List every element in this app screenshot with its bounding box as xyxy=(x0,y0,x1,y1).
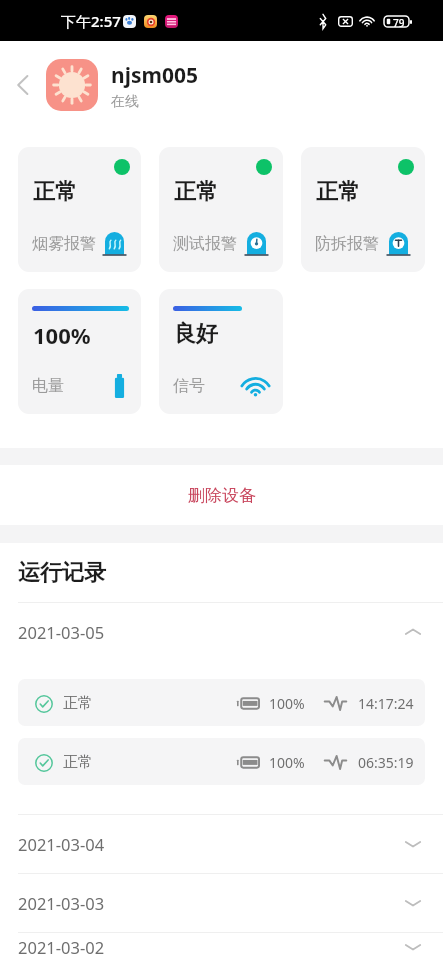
staticText: 79 xyxy=(393,16,405,27)
staticText: 烟雾报警 xyxy=(32,234,96,254)
staticText: 100% xyxy=(269,694,305,713)
staticText: 运行记录 xyxy=(18,559,106,587)
staticText: 正常 xyxy=(316,178,360,206)
button[interactable]: 2021-03-03 xyxy=(0,874,443,932)
staticText: 信号 xyxy=(173,376,205,396)
button[interactable]: 正常 xyxy=(159,147,283,272)
staticText: 下午2:57 xyxy=(61,11,121,31)
staticText: njsm005 xyxy=(111,61,198,90)
staticText: 正常 xyxy=(33,178,77,206)
staticText: 2021-03-05 xyxy=(18,621,105,643)
staticText: 防拆报警 xyxy=(315,234,379,254)
button[interactable]: 正常 xyxy=(18,679,425,726)
button[interactable]: 100% xyxy=(18,289,141,414)
button[interactable]: 2021-03-04 xyxy=(0,815,443,873)
button[interactable]: 正常 xyxy=(301,147,425,272)
staticText: 06:35:19 xyxy=(358,753,414,772)
staticText: 100% xyxy=(33,320,91,350)
staticText: 正常 xyxy=(63,753,93,772)
staticText: 良好 xyxy=(174,320,218,348)
button[interactable]: 正常 xyxy=(18,738,425,785)
staticText: 14:17:24 xyxy=(358,694,414,713)
staticText: 在线 xyxy=(111,93,139,111)
button[interactable]: 删除设备 xyxy=(0,465,443,525)
button[interactable]: Back xyxy=(7,69,39,101)
button[interactable]: 良好 xyxy=(159,289,283,414)
staticText: 删除设备 xyxy=(188,485,256,506)
button[interactable]: 2021-03-05 xyxy=(0,603,443,661)
staticText: 测试报警 xyxy=(173,234,237,254)
button[interactable]: 2021-03-02 xyxy=(0,933,443,960)
staticText: 2021-03-02 xyxy=(18,936,105,958)
staticText: 100% xyxy=(269,753,305,772)
staticText: 2021-03-03 xyxy=(18,892,105,914)
staticText: 正常 xyxy=(63,694,93,713)
staticText: 电量 xyxy=(32,376,64,396)
button[interactable]: 正常 xyxy=(18,147,141,272)
staticText: 正常 xyxy=(174,178,218,206)
staticText: 2021-03-04 xyxy=(18,833,105,855)
